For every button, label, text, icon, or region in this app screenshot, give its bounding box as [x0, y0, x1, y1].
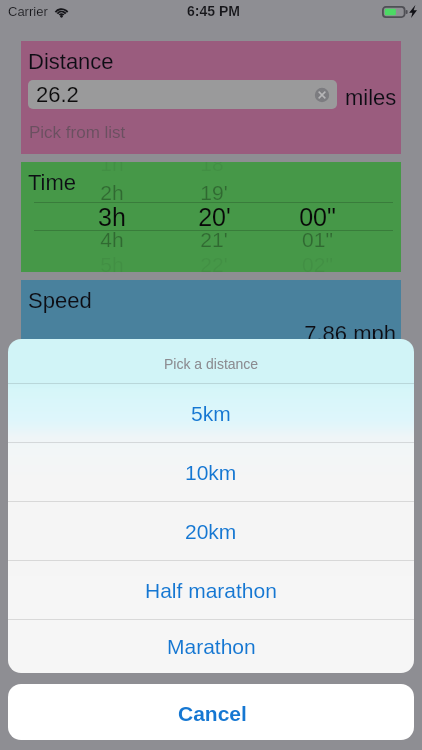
button[interactable]: Marathon [8, 620, 414, 673]
staticText: Cancel [178, 702, 247, 725]
staticText: 5h [100, 253, 124, 272]
button[interactable]: Clear text [314, 87, 330, 103]
staticText: 10km [185, 461, 237, 484]
staticText: 21' [200, 228, 228, 251]
button[interactable]: Pick from list [21, 118, 173, 146]
button[interactable]: 5km [8, 384, 414, 442]
staticText: Speed [28, 288, 92, 313]
staticText: Time [28, 170, 77, 195]
staticText: 6:45 PM [187, 3, 240, 19]
other: Charging [409, 5, 417, 18]
staticText: 19' [200, 181, 228, 204]
staticText: 20km [185, 520, 237, 543]
staticText: Pick from list [29, 123, 126, 142]
staticText: 26.2 [36, 82, 79, 107]
staticText: 2h [100, 181, 124, 204]
staticText: Carrier [8, 4, 48, 19]
staticText: 4h [100, 228, 124, 251]
staticText: Distance [28, 49, 114, 74]
button[interactable]: Cancel [8, 684, 414, 740]
button[interactable]: 26.2 [28, 80, 337, 109]
staticText: 00" [299, 203, 336, 231]
button[interactable]: 20km [8, 502, 414, 560]
staticText: miles [345, 85, 397, 110]
staticText: 01" [302, 228, 333, 251]
staticText: Marathon [167, 635, 256, 658]
staticText: Half marathon [145, 579, 277, 602]
staticText: 5km [191, 402, 231, 425]
staticText: Pick a distance [164, 356, 259, 372]
staticText: 7.86 mph [21, 321, 396, 346]
button[interactable]: Half marathon [8, 561, 414, 619]
button[interactable]: 10km [8, 443, 414, 501]
staticText: 3h [98, 203, 126, 231]
staticText: 20' [198, 203, 231, 231]
